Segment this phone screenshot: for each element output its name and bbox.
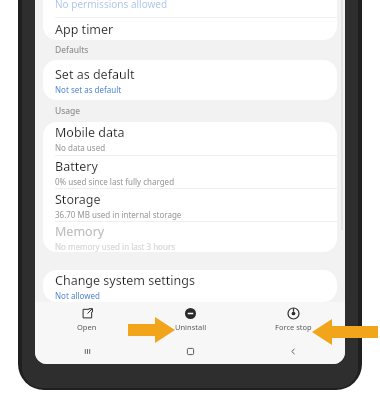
staticText: Not set as default — [55, 84, 122, 95]
button[interactable]: Home — [139, 338, 242, 364]
button[interactable]: Change system settings — [43, 270, 337, 302]
staticText: 0% used since last fully charged — [55, 176, 175, 187]
button[interactable]: Back — [242, 338, 345, 364]
staticText: Change system settings — [55, 272, 195, 289]
staticText: Battery — [55, 158, 98, 175]
button[interactable]: App timer — [43, 18, 337, 40]
staticText: Memory — [55, 223, 105, 240]
button[interactable]: Memory — [43, 222, 337, 252]
button[interactable]: Recents — [35, 338, 139, 364]
staticText: 36.70 MB used in internal storage — [55, 209, 182, 220]
staticText: Not allowed — [55, 290, 100, 301]
button[interactable]: Mobile data — [43, 122, 337, 155]
button[interactable]: Storage — [43, 189, 337, 221]
button[interactable]: Uninstall — [139, 302, 242, 338]
staticText: Force stop — [275, 322, 312, 332]
staticText: No data used — [55, 142, 106, 153]
staticText: No memory used in last 3 hours — [55, 241, 176, 252]
button[interactable]: Open — [35, 302, 139, 338]
staticText: Mobile data — [55, 124, 125, 141]
button[interactable]: Battery — [43, 156, 337, 188]
staticText: Uninstall — [175, 322, 207, 332]
staticText: Set as default — [55, 66, 135, 83]
staticText: No permissions allowed — [55, 0, 168, 11]
staticText: Storage — [55, 191, 101, 208]
staticText: App timer — [55, 21, 114, 38]
staticText: Open — [77, 322, 97, 332]
button[interactable]: Force stop — [242, 302, 345, 338]
staticText: Defaults — [55, 44, 89, 56]
staticText: Usage — [55, 105, 81, 117]
button[interactable]: Set as default — [43, 60, 337, 100]
